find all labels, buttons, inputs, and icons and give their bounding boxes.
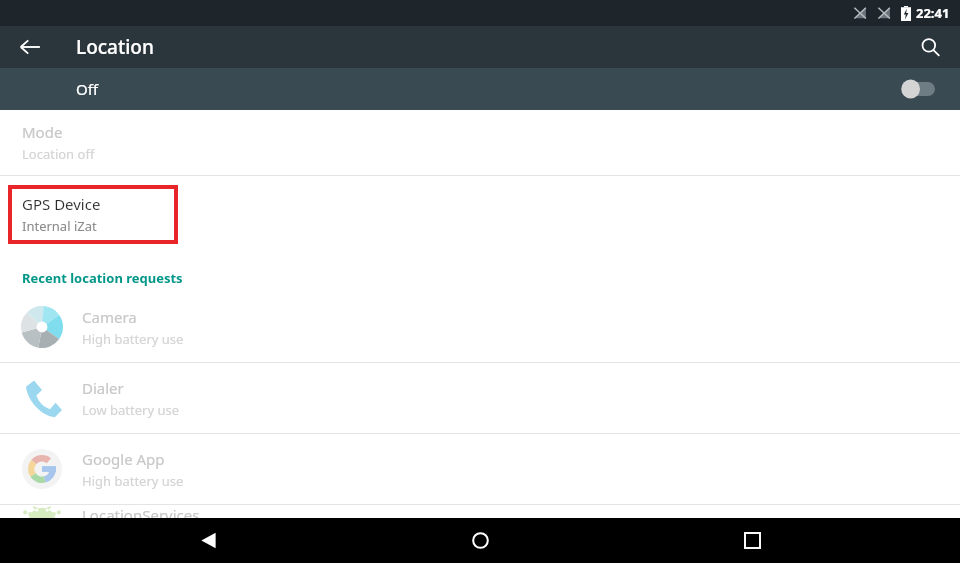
button[interactable]: LocationServices [0,505,960,518]
button[interactable]: Search [910,27,950,67]
staticText: Recent location requests [22,269,183,287]
button[interactable]: Dialer [0,363,960,433]
button[interactable]: Back [180,518,236,563]
staticText: High battery use [82,330,184,348]
staticText: GPS Device [22,194,101,214]
staticText: Off [76,79,99,99]
staticText: 22:41 [916,4,950,22]
staticText: Low battery use [82,401,179,419]
button[interactable]: Mode [0,110,960,175]
staticText: LocationServices [82,505,200,518]
staticText: Location [76,34,154,60]
button[interactable]: GPS Device [0,176,960,248]
staticText: Location off [22,145,95,163]
button[interactable]: Recent apps [724,518,780,563]
staticText: Camera [82,307,137,327]
staticText: Dialer [82,378,124,398]
staticText: High battery use [82,472,184,490]
staticText: Internal iZat [22,217,97,235]
button[interactable]: Home [452,518,508,563]
button[interactable]: Google App [0,434,960,504]
staticText: Google App [82,449,165,469]
button[interactable]: Off [0,68,960,110]
button[interactable]: Camera [0,292,960,362]
button[interactable]: Back [8,26,52,68]
staticText: Mode [22,122,63,142]
